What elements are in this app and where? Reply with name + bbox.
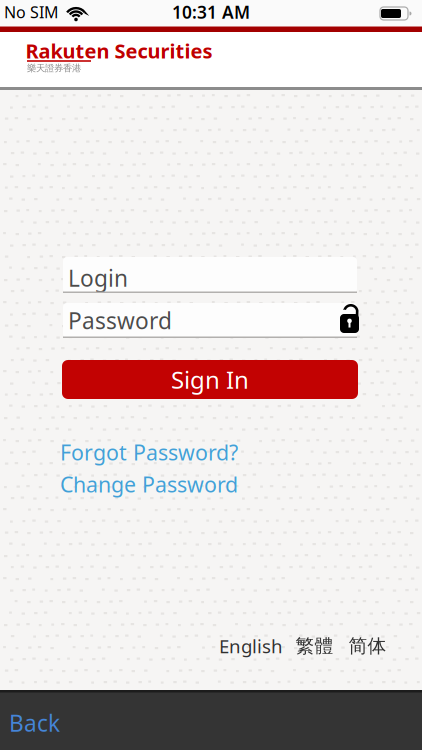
staticText: 樂天證券香港 <box>27 62 81 74</box>
button[interactable]: Sign In <box>62 360 358 399</box>
button[interactable]: Login <box>63 257 357 293</box>
staticText: Sign In <box>171 364 249 395</box>
button[interactable]: Password <box>63 303 357 338</box>
staticText: Rakuten Securities <box>25 37 212 64</box>
button[interactable]: Change Password <box>60 470 238 498</box>
staticText: 10:31 AM <box>172 0 250 23</box>
staticText: Back <box>9 708 60 738</box>
staticText: Change Password <box>60 470 238 498</box>
staticText: Login <box>68 263 128 293</box>
button[interactable]: 繁體 <box>295 634 333 657</box>
button[interactable]: English <box>219 634 283 658</box>
button[interactable]: 简体 <box>348 634 386 657</box>
staticText: Forgot Password? <box>60 438 238 466</box>
staticText: 繁體 <box>295 634 333 657</box>
staticText: 简体 <box>348 634 386 657</box>
staticText: Password <box>68 305 172 336</box>
button[interactable]: Back <box>9 708 60 738</box>
button[interactable]: Forgot Password? <box>60 438 238 466</box>
staticText: No SIM <box>4 1 59 23</box>
staticText: English <box>219 634 283 658</box>
